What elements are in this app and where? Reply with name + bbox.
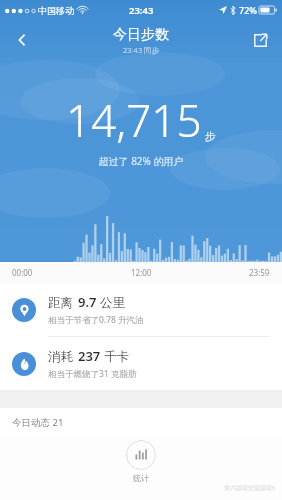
staticText: 第六版权交流版权6 — [224, 484, 276, 492]
button[interactable]: 消耗 — [0, 337, 282, 390]
staticText: 237 — [78, 347, 101, 365]
staticText: 今日动态 21 — [12, 416, 64, 429]
button[interactable]: 距离 — [0, 283, 282, 336]
staticText: 23:43 同步 — [123, 45, 160, 55]
button[interactable]: Share — [238, 20, 282, 60]
staticText: 相当于节省了0.78 升汽油 — [48, 314, 144, 326]
staticText: 距离 — [48, 295, 73, 311]
staticText: 中国移动 — [38, 5, 74, 16]
staticText: 消耗 — [48, 349, 73, 365]
staticText: 72% — [239, 4, 257, 16]
staticText: 23:59 — [249, 267, 270, 278]
staticText: 9.7 — [78, 293, 97, 311]
staticText: 相当于燃烧了31 克脂肪 — [48, 368, 137, 380]
staticText: 千卡 — [104, 349, 129, 365]
staticText: 12:00 — [131, 267, 152, 278]
staticText: 00:00 — [12, 267, 33, 278]
staticText: 超过了 82% 的用户 — [0, 154, 282, 168]
staticText: 步 — [205, 129, 216, 143]
staticText: 23:43 — [129, 4, 154, 17]
staticText: 14,715 — [66, 90, 202, 150]
button[interactable]: 统计 — [126, 440, 156, 483]
staticText: 今日步数 — [113, 26, 169, 44]
staticText: 统计 — [133, 473, 149, 483]
staticText: 公里 — [100, 295, 125, 311]
button[interactable]: Back — [0, 20, 44, 60]
button[interactable]: 今日动态 21 — [0, 408, 282, 436]
